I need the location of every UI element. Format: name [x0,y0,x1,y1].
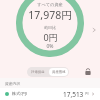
button[interactable]: 金額を隠す [82,66,94,78]
button[interactable]: 評価損益 [27,67,48,77]
staticText: 前日比 [44,25,56,30]
staticText: 0円 [43,31,58,43]
staticText: 資産推移 [52,70,66,74]
button[interactable]: 資産推移 [49,68,68,76]
staticText: 円 [85,92,89,97]
button[interactable]: 次へ [88,24,100,36]
staticText: 評価損益 [31,70,45,74]
staticText: 株式(円) [12,91,28,97]
staticText: 17,978円 [28,8,72,22]
staticText: 0% [46,43,54,50]
button[interactable]: 株式(円) [0,88,100,100]
staticText: すべての資産 [37,2,63,7]
staticText: 17,513 [63,90,84,99]
staticText: 資産内訳 [5,81,21,86]
